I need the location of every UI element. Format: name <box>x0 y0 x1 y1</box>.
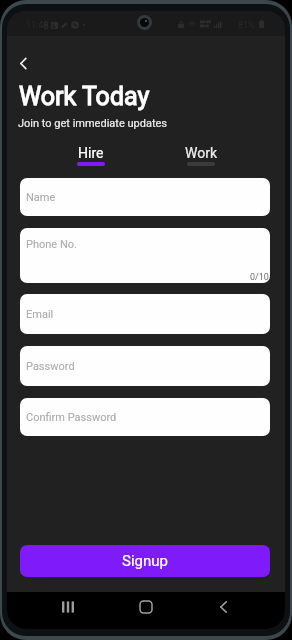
staticText: Confirm Password <box>26 411 117 424</box>
button[interactable]: Name <box>20 178 270 216</box>
button[interactable]: Recent apps <box>54 593 82 621</box>
button[interactable]: Confirm Password <box>20 398 270 436</box>
staticText: Signup <box>122 552 168 570</box>
staticText: Hire <box>78 145 104 161</box>
button[interactable]: Phone No. <box>20 228 270 283</box>
staticText: Phone No. <box>26 238 77 251</box>
button[interactable]: Email <box>20 294 270 334</box>
staticText: Name <box>26 191 56 204</box>
staticText: 11:48 <box>26 20 49 31</box>
staticText: Work Today <box>19 82 150 111</box>
staticText: Password <box>26 360 75 373</box>
staticText: Join to get immediate updates <box>18 117 168 130</box>
staticText: 81% <box>238 20 255 31</box>
button[interactable]: Home <box>132 593 160 621</box>
staticText: Email <box>26 308 54 321</box>
staticText: 0/10 <box>250 272 269 283</box>
button[interactable]: Work <box>146 145 256 166</box>
button[interactable]: Signup <box>20 545 270 577</box>
staticText: Work <box>185 145 218 161</box>
button[interactable]: Password <box>20 346 270 386</box>
button[interactable]: Back <box>10 50 37 77</box>
button[interactable]: Back <box>209 593 237 621</box>
button[interactable]: Hire <box>36 145 146 166</box>
